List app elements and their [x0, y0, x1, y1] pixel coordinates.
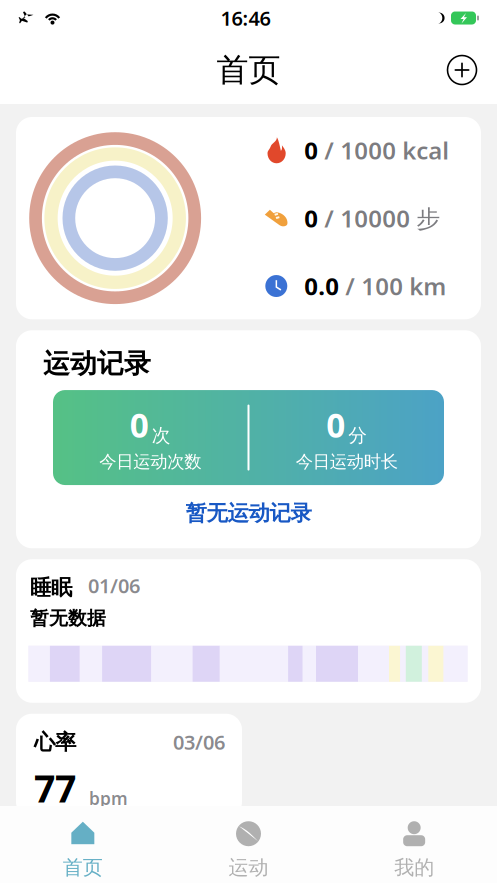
staticText: 77 [34, 763, 76, 813]
staticText: 今日运动时长 [296, 451, 398, 472]
staticText: 今日运动次数 [99, 451, 201, 472]
staticText: 01/06 [88, 572, 140, 599]
staticText: 首页 [216, 50, 280, 90]
staticText: / 1000 kcal [318, 134, 449, 166]
staticText: / 100 km [339, 270, 446, 302]
staticText: 0.0 [304, 270, 339, 302]
staticText: 0 [326, 403, 345, 447]
staticText: 16:46 [220, 5, 270, 31]
staticText: 0 [304, 134, 318, 166]
staticText: bpm [89, 787, 128, 810]
button[interactable]: Add [447, 55, 477, 85]
staticText: / 10000 步 [318, 202, 440, 234]
button[interactable]: 首页 [0, 821, 166, 880]
staticText: 次 [152, 424, 171, 447]
button[interactable]: 运动 [166, 821, 331, 880]
staticText: 心率 [34, 729, 76, 755]
staticText: 运动 [228, 855, 268, 880]
button[interactable]: 我的 [331, 821, 497, 880]
staticText: 暂无运动记录 [185, 500, 311, 526]
button[interactable]: 暂无运动记录 [32, 500, 465, 526]
staticText: 0 [304, 202, 318, 234]
staticText: 分 [348, 424, 367, 447]
staticText: 运动记录 [43, 347, 151, 380]
staticText: 我的 [394, 855, 434, 880]
staticText: 暂无数据 [30, 607, 106, 630]
staticText: 0 [130, 403, 149, 447]
staticText: 首页 [63, 855, 103, 880]
staticText: 03/06 [173, 729, 225, 755]
staticText: 睡眠 [30, 575, 72, 601]
